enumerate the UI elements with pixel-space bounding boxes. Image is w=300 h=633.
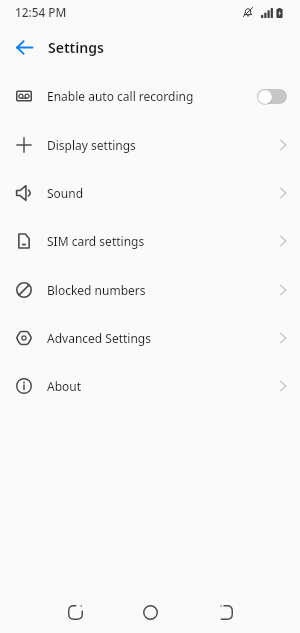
button[interactable]: About — [0, 362, 300, 410]
staticText: Sound — [47, 185, 84, 201]
staticText: Settings — [48, 38, 104, 57]
button[interactable]: Advanced Settings — [0, 314, 300, 362]
staticText: Blocked numbers — [47, 282, 146, 298]
button[interactable]: Back — [8, 31, 40, 63]
staticText: Display settings — [47, 137, 136, 153]
staticText: 12:54 PM — [15, 4, 67, 20]
button[interactable]: Display settings — [0, 121, 300, 169]
staticText: Enable auto call recording — [47, 88, 194, 104]
button[interactable]: Blocked numbers — [0, 266, 300, 314]
staticText: SIM card settings — [47, 233, 145, 249]
staticText: Advanced Settings — [47, 330, 151, 346]
button[interactable]: Back — [205, 592, 245, 632]
button[interactable]: Home — [130, 592, 170, 632]
staticText: About — [47, 378, 82, 394]
button[interactable]: Sound — [0, 169, 300, 217]
button[interactable]: Recent apps — [55, 592, 95, 632]
button[interactable]: SIM card settings — [0, 217, 300, 265]
button[interactable]: Enable auto call recording — [0, 72, 300, 120]
